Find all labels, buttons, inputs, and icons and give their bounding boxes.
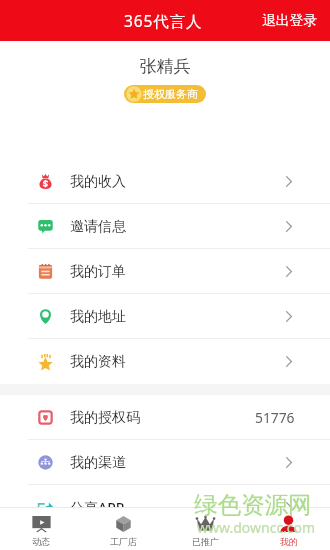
button[interactable]: 邀请信息 — [0, 204, 330, 249]
button[interactable]: 授权服务商 — [124, 85, 206, 103]
staticText: 我的收入 — [70, 173, 126, 191]
button[interactable]: 我的资料 — [0, 339, 330, 384]
staticText: www.downcc.com — [197, 518, 316, 537]
staticText: 我的授权码 — [70, 409, 140, 427]
button[interactable]: 我的地址 — [0, 294, 330, 339]
staticText: 365代言人 — [124, 10, 203, 31]
staticText: 邀请信息 — [70, 218, 126, 236]
staticText: 我的地址 — [70, 308, 126, 326]
button[interactable]: 动态 — [0, 508, 82, 550]
staticText: 51776 — [255, 408, 295, 427]
staticText: 张精兵 — [0, 56, 330, 77]
staticText: 绿色资源网 — [194, 490, 312, 520]
staticText: 我的渠道 — [70, 454, 126, 472]
button[interactable]: 我的渠道 — [0, 440, 330, 485]
staticText: 动态 — [32, 536, 50, 547]
button[interactable]: 我的 — [247, 508, 330, 550]
staticText: 我的资料 — [70, 353, 126, 371]
button[interactable]: 我的收入 — [0, 159, 330, 204]
staticText: 已推广 — [192, 536, 219, 547]
button[interactable]: 我的授权码 — [0, 395, 330, 440]
staticText: 授权服务商 — [143, 87, 198, 101]
button[interactable]: 我的订单 — [0, 249, 330, 294]
button[interactable]: 退出登录 — [250, 2, 330, 39]
button[interactable]: 工厂店 — [82, 508, 164, 550]
button[interactable]: 分享APP — [0, 485, 330, 530]
staticText: 分享APP — [70, 498, 125, 517]
button[interactable]: 已推广 — [164, 508, 247, 550]
staticText: 我的 — [280, 536, 298, 547]
staticText: 退出登录 — [262, 12, 318, 29]
staticText: 工厂店 — [110, 536, 137, 547]
staticText: 我的订单 — [70, 263, 126, 281]
